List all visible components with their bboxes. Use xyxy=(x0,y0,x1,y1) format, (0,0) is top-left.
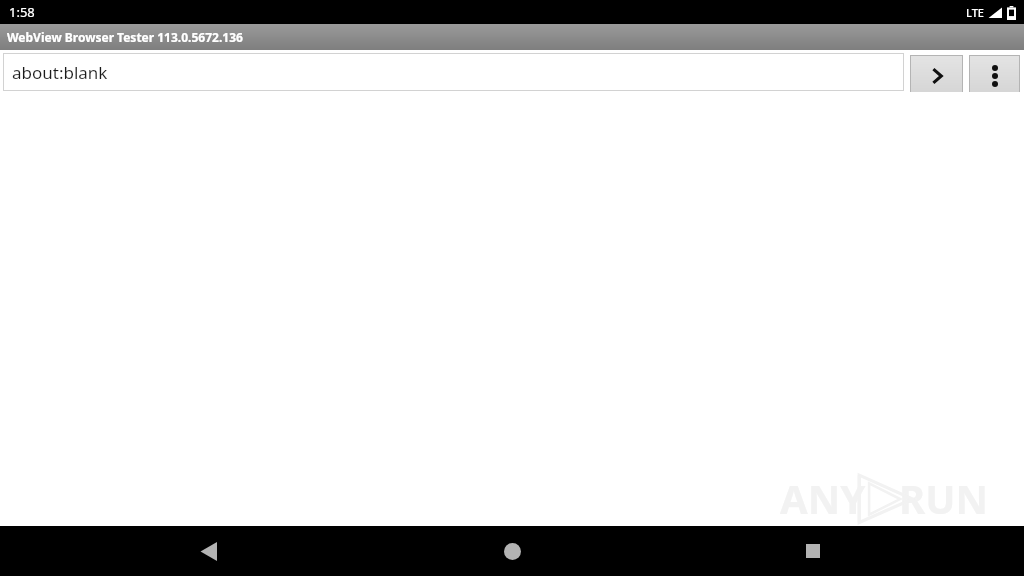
button[interactable]: Go xyxy=(910,55,963,97)
button[interactable]: More options xyxy=(969,55,1020,97)
button[interactable]: Home xyxy=(482,526,542,576)
button[interactable]: Back xyxy=(178,526,238,576)
staticText: 1:58 xyxy=(9,3,35,21)
button[interactable]: about:blank xyxy=(3,53,904,91)
staticText: LTE xyxy=(966,5,984,20)
staticText: about:blank xyxy=(12,61,108,84)
button[interactable]: Recent apps xyxy=(783,526,843,576)
staticText: ANY xyxy=(780,471,866,525)
staticText: RUN xyxy=(899,471,988,525)
staticText: WebView Browser Tester 113.0.5672.136 xyxy=(7,29,243,45)
